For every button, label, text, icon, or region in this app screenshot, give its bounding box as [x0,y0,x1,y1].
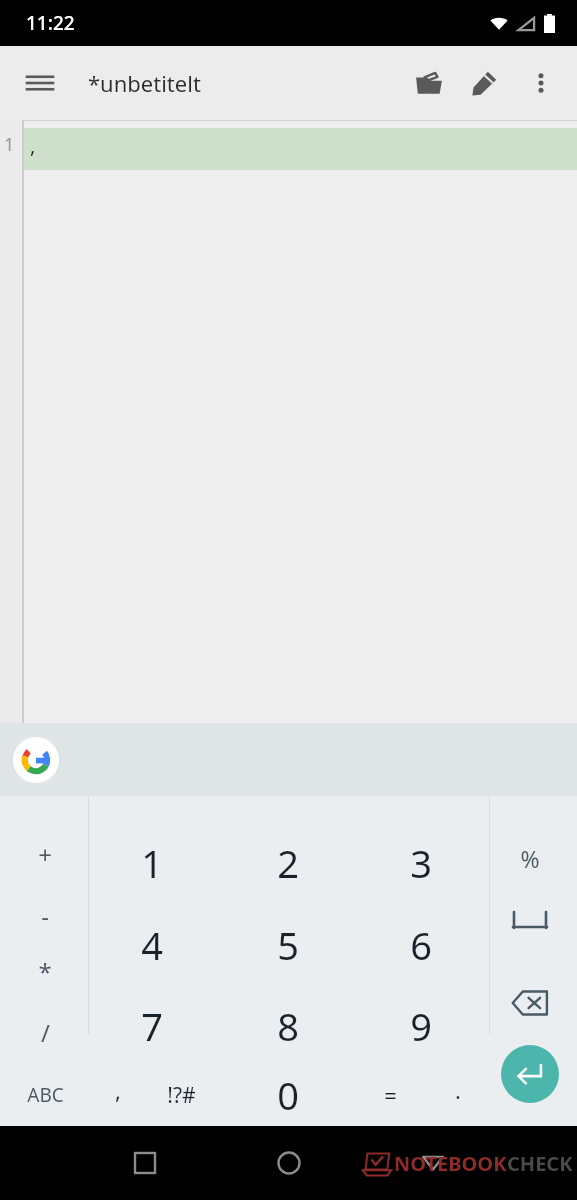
button[interactable]: = [350,1065,430,1125]
button[interactable]: 4 [112,915,192,975]
staticText: / [41,1016,50,1049]
staticText: CHECK [507,1150,573,1177]
button[interactable]: 5 [248,915,328,975]
staticText: ABC [27,1082,64,1108]
staticText: , [115,1075,121,1105]
button[interactable]: 2 [248,833,328,893]
button[interactable]: Recent apps [119,1137,171,1189]
staticText: *unbetitelt [88,68,201,98]
button[interactable]: 1 [112,833,192,893]
staticText: 3 [410,837,432,889]
button[interactable]: / [5,1002,85,1062]
staticText: 2 [277,837,299,889]
staticText: . [455,1075,461,1105]
staticText: 4 [141,919,163,971]
button[interactable]: - [5,885,85,945]
button[interactable]: Menu [16,59,64,107]
button[interactable]: + [5,824,85,884]
button[interactable]: Space [501,891,559,949]
button[interactable]: 9 [381,996,461,1056]
button[interactable]: Back [407,1137,459,1189]
button[interactable]: 3 [381,833,461,893]
staticText: 1 [4,132,15,157]
button[interactable]: Home [263,1137,315,1189]
button[interactable]: Enter [501,1045,559,1103]
staticText: !?# [167,1081,196,1110]
button[interactable]: Open file [401,55,457,111]
staticText: * [38,955,52,988]
button[interactable]: 0 [248,1065,328,1125]
button[interactable]: ABC [5,1065,85,1125]
button[interactable]: More options [513,55,569,111]
button[interactable]: 8 [248,996,328,1056]
staticText: NOTEBOOK [394,1150,507,1177]
button[interactable]: . [418,1060,498,1120]
staticText: 9 [410,1000,432,1052]
button[interactable]: 6 [381,915,461,975]
staticText: % [520,843,540,874]
staticText: 0 [277,1069,299,1121]
button[interactable]: % [490,828,570,888]
button[interactable]: Google [13,737,59,783]
button[interactable]: Edit [457,55,513,111]
staticText: 8 [277,1000,299,1052]
staticText: 7 [141,1000,163,1052]
button[interactable]: !?# [141,1065,221,1125]
staticText: 6 [410,919,432,971]
button[interactable]: 7 [112,996,192,1056]
staticText: 1 [141,837,163,889]
staticText: - [41,899,49,932]
staticText: , [30,132,36,159]
button[interactable]: * [5,941,85,1001]
staticText: = [384,1080,397,1110]
button[interactable]: , [78,1060,158,1120]
staticText: + [38,838,52,871]
staticText: 5 [277,919,299,971]
button[interactable]: Backspace [501,974,559,1032]
staticText: 11:22 [26,10,75,36]
